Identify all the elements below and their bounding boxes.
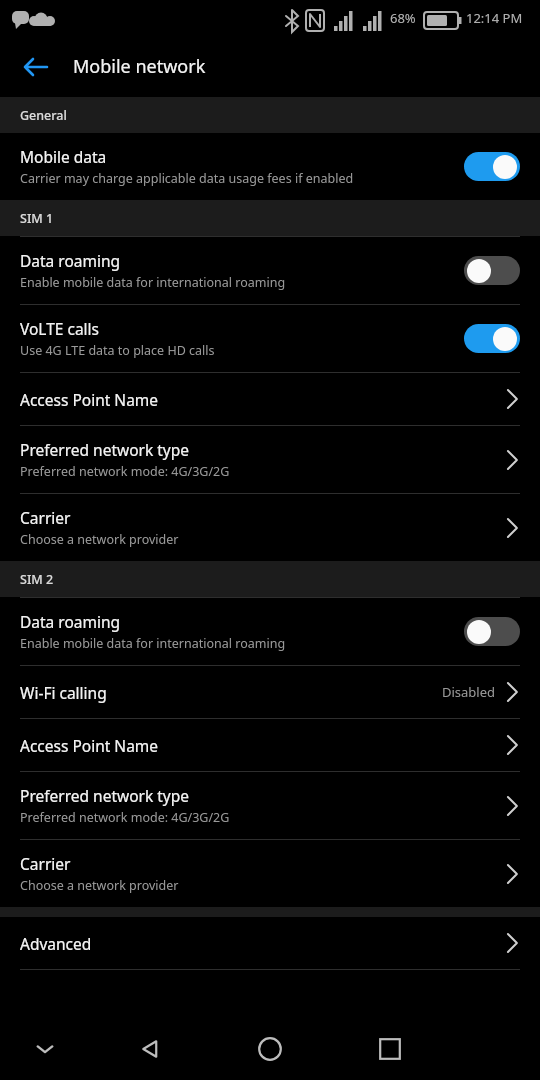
staticText: Carrier	[20, 507, 71, 528]
staticText: Mobile data	[20, 146, 107, 167]
button[interactable]: Data roaming	[0, 598, 540, 665]
button[interactable]: Toggle off	[464, 256, 520, 285]
staticText: VoLTE calls	[20, 318, 100, 339]
staticText: SIM 1	[20, 210, 54, 227]
staticText: 12:14 PM	[466, 9, 523, 27]
staticText: Carrier may charge applicable data usage…	[20, 170, 354, 187]
button[interactable]: Access Point Name	[0, 373, 540, 425]
button[interactable]: Data roaming	[0, 237, 540, 304]
staticText: Carrier	[20, 853, 71, 874]
staticText: Data roaming	[20, 611, 121, 632]
staticText: Use 4G LTE data to place HD calls	[20, 342, 215, 359]
staticText: Advanced	[20, 933, 92, 954]
button[interactable]: Toggle off	[464, 617, 520, 646]
staticText: Access Point Name	[20, 735, 159, 756]
button[interactable]: Back	[14, 45, 58, 89]
staticText: Wi-Fi calling	[20, 682, 107, 703]
button[interactable]: VoLTE calls	[0, 305, 540, 372]
staticText: Choose a network provider	[20, 531, 179, 548]
staticText: Access Point Name	[20, 389, 159, 410]
staticText: Enable mobile data for international roa…	[20, 635, 286, 652]
staticText: Data roaming	[20, 250, 121, 271]
staticText: Mobile network	[73, 54, 206, 79]
button[interactable]: Toggle on	[464, 324, 520, 353]
staticText: SIM 2	[20, 571, 54, 588]
staticText: Preferred network type	[20, 785, 190, 806]
staticText: Preferred network type	[20, 439, 190, 460]
button[interactable]: Recent apps	[330, 1018, 450, 1080]
staticText: Preferred network mode: 4G/3G/2G	[20, 809, 230, 826]
button[interactable]: Preferred network type	[0, 426, 540, 493]
staticText: Enable mobile data for international roa…	[20, 274, 286, 291]
staticText: General	[20, 107, 67, 124]
button[interactable]: Home	[210, 1018, 330, 1080]
button[interactable]: Toggle on	[464, 152, 520, 181]
staticText: Preferred network mode: 4G/3G/2G	[20, 463, 230, 480]
button[interactable]: Access Point Name	[0, 719, 540, 771]
button[interactable]: Back	[90, 1018, 210, 1080]
button[interactable]: Carrier	[0, 494, 540, 561]
staticText: Choose a network provider	[20, 877, 179, 894]
button[interactable]: Preferred network type	[0, 772, 540, 839]
button[interactable]: Advanced	[0, 917, 540, 969]
staticText: 68%	[390, 9, 416, 27]
button[interactable]: Carrier	[0, 840, 540, 907]
button[interactable]: Mobile data	[0, 133, 540, 200]
button[interactable]: Hide keyboard	[0, 1018, 90, 1080]
staticText: Disabled	[442, 683, 496, 701]
button[interactable]: Wi-Fi calling	[0, 666, 540, 718]
